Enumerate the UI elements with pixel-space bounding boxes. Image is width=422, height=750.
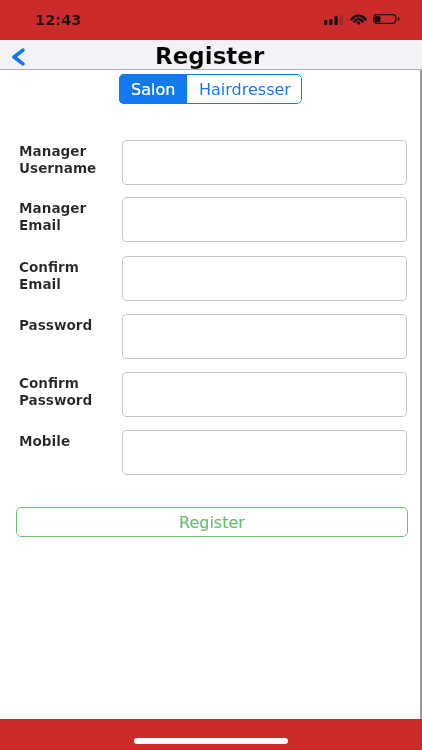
staticText: Password xyxy=(19,317,93,333)
button[interactable]: Back xyxy=(0,40,34,70)
button[interactable]: Password xyxy=(122,314,407,359)
button[interactable]: Register xyxy=(16,507,408,537)
button[interactable]: Confirm Email xyxy=(122,256,407,301)
button[interactable]: Mobile xyxy=(122,430,407,475)
staticText: Salon xyxy=(131,80,176,99)
staticText: Manager Email xyxy=(19,200,87,233)
staticText: Hairdresser xyxy=(199,80,291,99)
button[interactable]: Confirm Password xyxy=(122,372,407,417)
staticText: Register xyxy=(179,513,245,532)
button[interactable]: Salon xyxy=(119,74,187,104)
staticText: 12:43 xyxy=(35,11,82,28)
button[interactable]: Manager Username xyxy=(122,140,407,185)
staticText: Confirm Password xyxy=(19,375,93,408)
staticText: Mobile xyxy=(19,433,71,449)
button[interactable]: Manager Email xyxy=(122,197,407,242)
staticText: Confirm Email xyxy=(19,259,79,292)
button[interactable]: Hairdresser xyxy=(187,74,302,104)
staticText: Manager Username xyxy=(19,143,97,176)
staticText: Register xyxy=(155,43,265,70)
